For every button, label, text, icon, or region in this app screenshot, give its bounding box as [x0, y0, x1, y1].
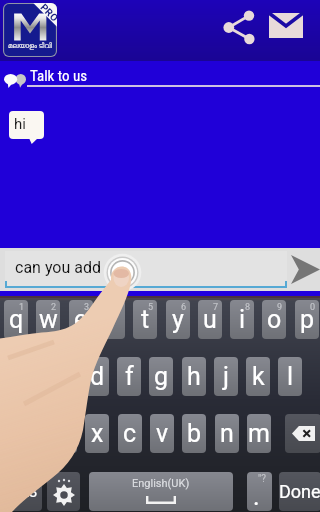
button[interactable]: d — [85, 357, 109, 396]
button[interactable]: y — [166, 300, 190, 339]
staticText: 4 — [116, 302, 122, 313]
button[interactable]: u — [198, 300, 222, 339]
staticText: y — [172, 305, 184, 334]
button[interactable]: gear — [47, 472, 80, 511]
button[interactable]: i — [230, 300, 254, 339]
staticText: d — [90, 362, 105, 391]
staticText: . — [253, 482, 260, 511]
staticText: w — [39, 305, 58, 334]
staticText: 5 — [148, 302, 154, 313]
staticText: m — [248, 419, 270, 448]
staticText: h — [187, 362, 201, 391]
button[interactable]: v — [150, 414, 174, 453]
staticText: can you add o — [15, 258, 115, 277]
staticText: n — [220, 419, 234, 448]
button[interactable]: ?123 — [0, 472, 42, 511]
staticText: x — [91, 419, 104, 448]
button[interactable]: Send — [291, 255, 320, 284]
staticText: j — [223, 362, 229, 391]
staticText: u — [203, 305, 217, 334]
staticText: 0 — [310, 302, 316, 313]
button[interactable]: s — [52, 357, 76, 396]
button[interactable]: j — [214, 357, 238, 396]
button[interactable]: Talk to us — [0, 61, 320, 90]
staticText: Talk to us — [30, 67, 88, 85]
button[interactable]: Mail — [264, 6, 312, 52]
button[interactable]: m — [247, 414, 271, 453]
button[interactable]: can you add o — [5, 251, 287, 288]
button[interactable]: t — [133, 300, 157, 339]
staticText: PRO — [38, 3, 57, 24]
button[interactable]: Share — [218, 6, 264, 52]
staticText: ?123 — [5, 483, 38, 501]
button[interactable]: p — [295, 300, 319, 339]
staticText: l — [287, 362, 294, 391]
button[interactable]: r — [101, 300, 125, 339]
button[interactable]: Done — [279, 472, 320, 511]
button[interactable]: x — [85, 414, 109, 453]
staticText: o — [267, 305, 282, 334]
staticText: English(UK) — [132, 477, 190, 490]
button[interactable]: e — [69, 300, 93, 339]
staticText: v — [156, 419, 169, 448]
button[interactable]: f — [117, 357, 141, 396]
staticText: k — [252, 362, 265, 391]
button[interactable]: n — [215, 414, 239, 453]
staticText: c — [123, 419, 137, 448]
button[interactable]: c — [118, 414, 142, 453]
staticText: i — [239, 305, 246, 334]
staticText: hi — [14, 115, 26, 133]
button[interactable]: o — [262, 300, 286, 339]
staticText: b — [187, 419, 202, 448]
staticText: 3 — [84, 302, 90, 313]
staticText: r — [109, 305, 118, 334]
staticText: p — [300, 305, 315, 334]
staticText: "? — [258, 473, 266, 485]
button[interactable]: space — [89, 472, 233, 511]
staticText: Done — [279, 481, 320, 502]
button[interactable]: k — [246, 357, 270, 396]
staticText: 9 — [277, 302, 283, 313]
button[interactable]: bksp — [285, 414, 320, 453]
button[interactable]: hi — [9, 111, 44, 139]
staticText: 1 — [19, 302, 25, 313]
staticText: f — [125, 362, 134, 391]
button[interactable]: z — [53, 414, 77, 453]
staticText: 8 — [245, 302, 251, 313]
button[interactable]: q — [4, 300, 28, 339]
button[interactable]: period — [247, 472, 272, 511]
staticText: 2 — [51, 302, 57, 313]
button[interactable]: l — [278, 357, 302, 396]
staticText: 6 — [181, 302, 187, 313]
button[interactable]: w — [36, 300, 60, 339]
staticText: മലയാളം ടിവി — [8, 41, 52, 51]
staticText: 7 — [213, 302, 219, 313]
staticText: t — [141, 305, 150, 334]
button[interactable]: App logo — [3, 3, 57, 57]
staticText: e — [74, 305, 88, 334]
button[interactable]: g — [149, 357, 173, 396]
button[interactable]: h — [182, 357, 206, 396]
button[interactable]: b — [182, 414, 206, 453]
staticText: g — [154, 362, 169, 391]
staticText: s — [58, 362, 71, 391]
staticText: q — [9, 305, 24, 334]
